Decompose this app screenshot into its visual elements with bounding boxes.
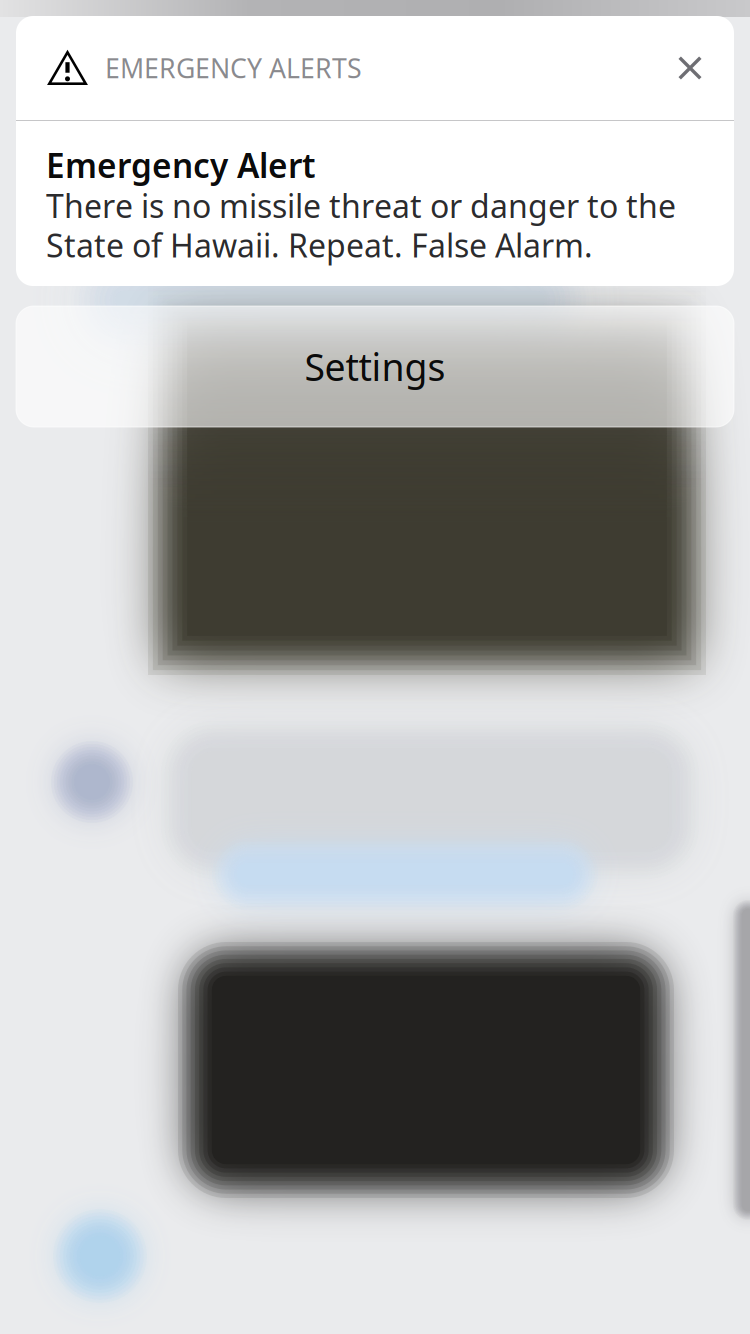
button[interactable]: Dismiss bbox=[662, 40, 718, 96]
staticText: EMERGENCY ALERTS bbox=[105, 50, 362, 86]
staticText: Emergency Alert bbox=[46, 143, 316, 187]
staticText: Settings bbox=[304, 342, 445, 391]
button[interactable]: Settings bbox=[16, 306, 734, 427]
staticText: There is no missile threat or danger to … bbox=[46, 184, 676, 227]
staticText: State of Hawaii. Repeat. False Alarm. bbox=[46, 224, 593, 266]
